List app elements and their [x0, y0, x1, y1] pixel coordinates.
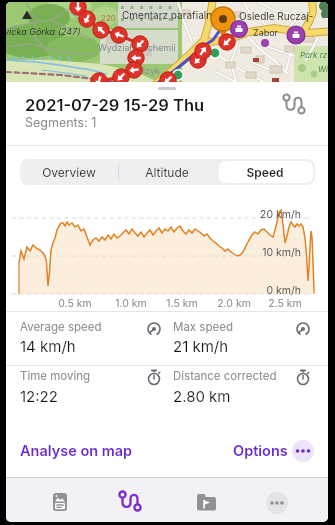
button[interactable]: Options: [228, 437, 318, 465]
staticText: 2021-07-29 15-29 Thu: [25, 95, 205, 115]
button[interactable]: Overview: [20, 159, 118, 185]
button[interactable]: [179, 481, 235, 521]
button[interactable]: [32, 481, 88, 521]
button[interactable]: [102, 481, 158, 521]
button[interactable]: [249, 481, 305, 521]
staticText: Max speed: [173, 320, 233, 334]
staticText: 1.5 km: [160, 297, 204, 310]
button[interactable]: Analyse on map: [20, 442, 133, 460]
staticText: Cmentarz parafialn: [122, 9, 213, 21]
staticText: Zabor: [253, 27, 279, 38]
staticText: 12:22: [20, 387, 58, 405]
staticText: 0 km/h: [229, 284, 301, 297]
staticText: 1.0 km: [109, 297, 153, 310]
staticText: 2.5 km: [263, 297, 307, 310]
staticText: 21 km/h: [173, 337, 229, 355]
staticText: Wydział Biochemii: [98, 42, 176, 53]
button[interactable]: Altitude: [118, 159, 216, 185]
staticText: Options: [233, 442, 288, 460]
staticText: Osiedle Ruczaj-: [239, 10, 314, 22]
staticText: Segments: 1: [25, 115, 97, 130]
staticText: Overview: [20, 165, 118, 180]
staticText: ofizyk: [134, 65, 160, 76]
staticText: 2.0 km: [212, 297, 256, 310]
staticText: Time moving: [20, 369, 91, 383]
staticText: 0.5 km: [53, 297, 97, 310]
staticText: Distance corrected: [173, 369, 277, 383]
staticText: 10 km/h: [229, 246, 301, 259]
staticText: Park rz: [300, 50, 328, 60]
staticText: 2.80 km: [173, 387, 231, 405]
button[interactable]: Speed: [216, 159, 314, 185]
staticText: Wi: [318, 64, 328, 74]
staticText: 20 km/h: [229, 208, 301, 221]
staticText: Speed: [216, 165, 314, 180]
staticText: Average speed: [20, 320, 102, 334]
staticText: vicka Górka (247): [6, 26, 81, 37]
staticText: 220: [101, 13, 116, 23]
button[interactable]: [282, 92, 306, 116]
staticText: Altitude: [118, 165, 216, 180]
staticText: 14 km/h: [20, 337, 76, 355]
